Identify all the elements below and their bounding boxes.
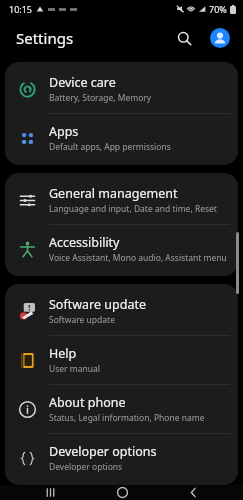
button[interactable]: General management bbox=[5, 176, 238, 225]
staticText: Accessibility bbox=[49, 234, 120, 251]
staticText: Developer options bbox=[49, 461, 123, 473]
staticText: Software update bbox=[49, 296, 146, 313]
staticText: Voice Assistant, Mono audio, Assistant m… bbox=[49, 252, 227, 264]
staticText: 70% bbox=[209, 3, 227, 15]
staticText: Software update bbox=[49, 314, 115, 326]
button[interactable]: Help bbox=[5, 336, 238, 385]
button[interactable]: Developer options bbox=[5, 434, 238, 482]
button[interactable]: Back bbox=[171, 485, 215, 500]
staticText: Language and input, Date and time, Reset bbox=[49, 203, 217, 215]
staticText: Status, Legal information, Phone name bbox=[49, 412, 205, 424]
staticText: Help bbox=[49, 345, 77, 362]
button[interactable]: Account bbox=[207, 25, 233, 51]
staticText: Default apps, App permissions bbox=[49, 141, 171, 153]
button[interactable]: Recents bbox=[28, 485, 72, 500]
staticText: Apps bbox=[49, 123, 79, 140]
button[interactable]: Home bbox=[100, 485, 144, 500]
staticText: 10:15 bbox=[9, 3, 33, 15]
staticText: General management bbox=[49, 185, 178, 202]
button[interactable]: Search bbox=[171, 25, 197, 51]
button[interactable]: Device care bbox=[5, 65, 238, 114]
staticText: About phone bbox=[49, 394, 126, 411]
button[interactable]: Accessibility bbox=[5, 225, 238, 273]
staticText: Device care bbox=[49, 74, 116, 91]
staticText: Battery, Storage, Memory bbox=[49, 92, 152, 104]
button[interactable]: About phone bbox=[5, 385, 238, 434]
button[interactable]: Software update bbox=[5, 287, 238, 336]
staticText: Settings bbox=[16, 28, 74, 48]
button[interactable]: Apps bbox=[5, 114, 238, 162]
staticText: Developer options bbox=[49, 443, 157, 460]
staticText: User manual bbox=[49, 363, 100, 375]
